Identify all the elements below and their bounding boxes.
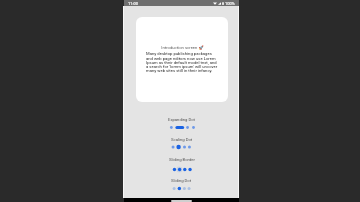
button[interactable]: Sliding dot page indicator: [171, 186, 193, 191]
staticText: 11:00: [128, 1, 138, 6]
staticText: Many desktop publishing packages and web…: [146, 51, 218, 73]
staticText: Expanding Dot: [168, 117, 195, 122]
button[interactable]: Sliding border page indicator: [171, 166, 194, 173]
other: Signal: [218, 2, 221, 5]
other: Battery: [222, 2, 224, 5]
other: Wifi: [213, 2, 217, 5]
staticText: Introduction screen 🚀: [161, 45, 204, 50]
staticText: 100%: [225, 1, 235, 6]
button[interactable]: Expanding dot page indicator: [169, 125, 196, 130]
staticText: Scaling Dot: [171, 137, 193, 142]
staticText: Sliding Dot: [171, 178, 192, 183]
staticText: Sliding Border: [169, 157, 195, 162]
button[interactable]: Introduction screen 🚀: [136, 17, 228, 102]
button[interactable]: Scaling dot page indicator: [170, 144, 193, 150]
